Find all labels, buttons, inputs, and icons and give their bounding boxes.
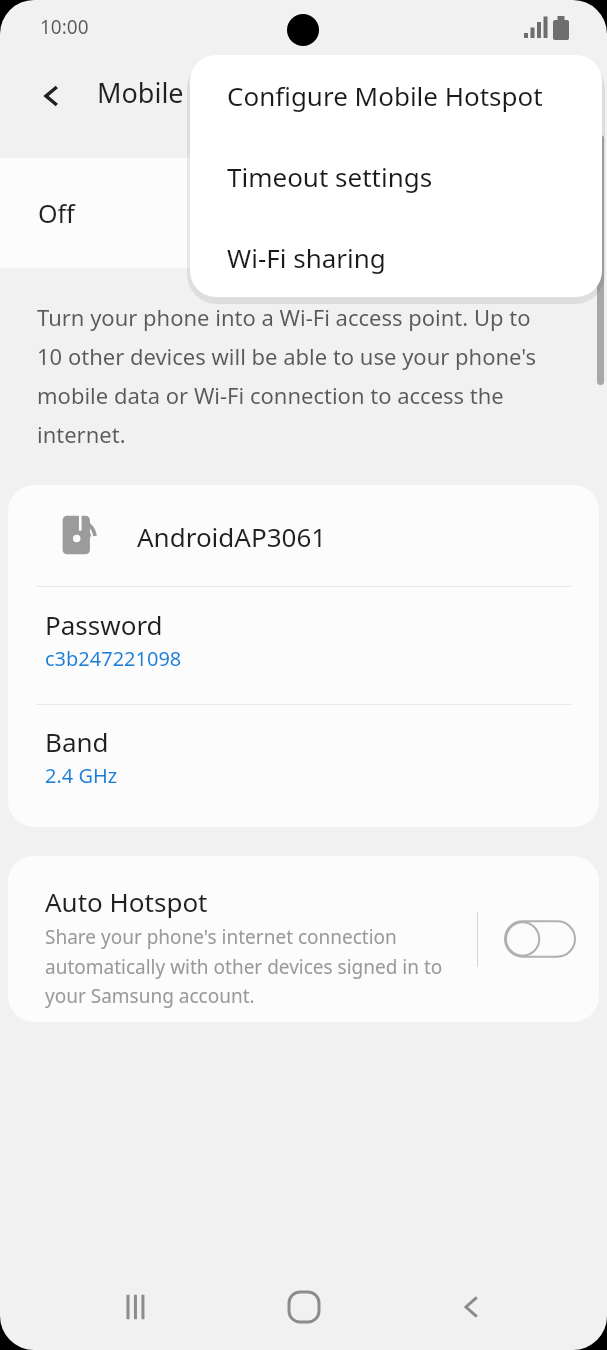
staticText: 10:00 [40, 14, 89, 40]
button[interactable]: Off [0, 158, 520, 268]
staticText: Configure Mobile Hotspot [227, 78, 543, 113]
button[interactable]: Wi-Fi sharing [190, 217, 602, 297]
staticText: Auto Hotspot [45, 884, 208, 919]
staticText: Password [45, 607, 163, 642]
staticText: Band [45, 724, 109, 759]
staticText: 2.4 GHz [45, 762, 118, 789]
button[interactable]: AndroidAP3061 [8, 485, 599, 586]
staticText: Timeout settings [227, 159, 433, 194]
button[interactable]: Password [8, 587, 599, 704]
button[interactable]: Recent apps [90, 1272, 182, 1342]
button[interactable]: Auto Hotspot [8, 856, 599, 1022]
staticText: c3b247221098 [45, 645, 182, 672]
staticText: Wi-Fi sharing [227, 240, 386, 275]
staticText: Share your phone's internet connection a… [45, 924, 465, 1008]
button[interactable]: Auto Hotspot toggle [505, 918, 575, 960]
staticText: AndroidAP3061 [137, 519, 327, 554]
button[interactable]: Back [426, 1272, 518, 1342]
staticText: Mobile Hotspot [97, 74, 293, 111]
button[interactable]: Timeout settings [190, 136, 602, 217]
button[interactable]: Configure Mobile Hotspot [190, 55, 602, 136]
button[interactable]: Home [258, 1272, 350, 1342]
button[interactable]: Band [8, 705, 599, 825]
staticText: Turn your phone into a Wi-Fi access poin… [37, 302, 537, 449]
staticText: Off [38, 196, 75, 230]
button[interactable]: Back [28, 72, 76, 120]
